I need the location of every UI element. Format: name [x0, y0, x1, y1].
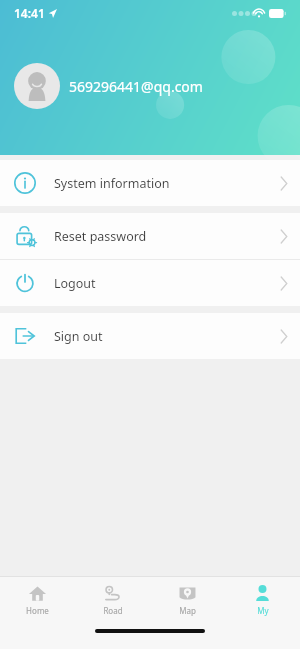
- staticText: Sign out: [54, 328, 103, 345]
- button[interactable]: Map: [150, 577, 225, 623]
- button[interactable]: Sign out: [0, 313, 300, 359]
- button[interactable]: Road: [75, 577, 150, 623]
- staticText: Logout: [54, 275, 96, 292]
- staticText: Road: [103, 605, 123, 616]
- staticText: System information: [54, 175, 170, 192]
- button[interactable]: My: [225, 577, 300, 623]
- staticText: My: [257, 605, 269, 616]
- other: Map: [178, 584, 197, 603]
- staticText: 14:41: [14, 5, 45, 21]
- staticText: Home: [26, 605, 49, 616]
- other: My: [253, 584, 272, 603]
- button[interactable]: Reset password: [0, 213, 300, 259]
- staticText: 569296441@qq.com: [69, 77, 203, 96]
- button[interactable]: Home: [0, 577, 75, 623]
- staticText: Reset password: [54, 228, 147, 245]
- staticText: Map: [179, 605, 196, 616]
- other: Home: [28, 584, 47, 603]
- button[interactable]: Logout: [0, 260, 300, 306]
- button[interactable]: System information: [0, 160, 300, 206]
- other: Road: [103, 584, 122, 603]
